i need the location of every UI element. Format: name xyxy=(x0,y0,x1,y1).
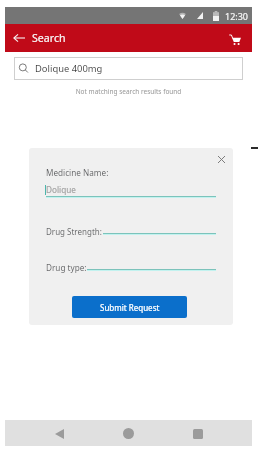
button[interactable]: Recent apps xyxy=(187,423,209,445)
staticText: Search xyxy=(32,31,66,45)
staticText: Not matching search results found xyxy=(5,87,252,96)
button[interactable]: Back xyxy=(10,29,28,47)
staticText: Drug Strength: xyxy=(46,226,102,237)
staticText: 12:30 xyxy=(225,10,249,22)
button[interactable]: Back xyxy=(48,423,70,445)
staticText: Drug type: xyxy=(46,262,87,273)
button[interactable]: Shopping cart xyxy=(228,32,242,46)
staticText: Submit Request xyxy=(100,302,160,313)
button[interactable]: Close xyxy=(214,152,228,166)
staticText: Medicine Name: xyxy=(46,167,109,178)
button[interactable]: Submit Request xyxy=(72,296,187,318)
button[interactable]: Home xyxy=(117,422,139,444)
staticText: Dolique xyxy=(46,184,76,195)
staticText: Dolique 400mg xyxy=(35,62,103,75)
button[interactable]: Dolique 400mg xyxy=(14,57,243,80)
